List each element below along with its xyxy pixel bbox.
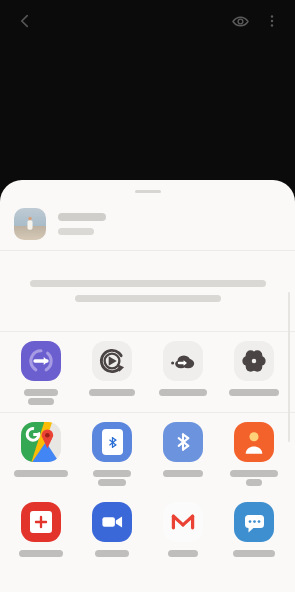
button[interactable]: Shared Album <box>219 332 289 403</box>
button[interactable]: More options <box>257 6 287 36</box>
button[interactable]: Meet <box>77 493 147 564</box>
button[interactable]: Back <box>8 4 42 38</box>
button[interactable]: Messages <box>219 493 289 564</box>
button[interactable]: Google Maps <box>6 413 76 484</box>
button[interactable]: Nearby Share <box>77 413 147 493</box>
button[interactable]: Contacts <box>219 413 289 493</box>
button[interactable]: Messages draft <box>6 493 76 564</box>
button[interactable] <box>0 198 295 250</box>
button[interactable]: Link Sharing <box>148 332 218 403</box>
button[interactable]: Gmail <box>148 493 218 564</box>
button[interactable]: Bluetooth <box>148 413 218 484</box>
button[interactable]: Smart View <box>77 332 147 403</box>
button[interactable]: Quick Share <box>6 332 76 412</box>
button[interactable]: Preview <box>223 4 257 38</box>
